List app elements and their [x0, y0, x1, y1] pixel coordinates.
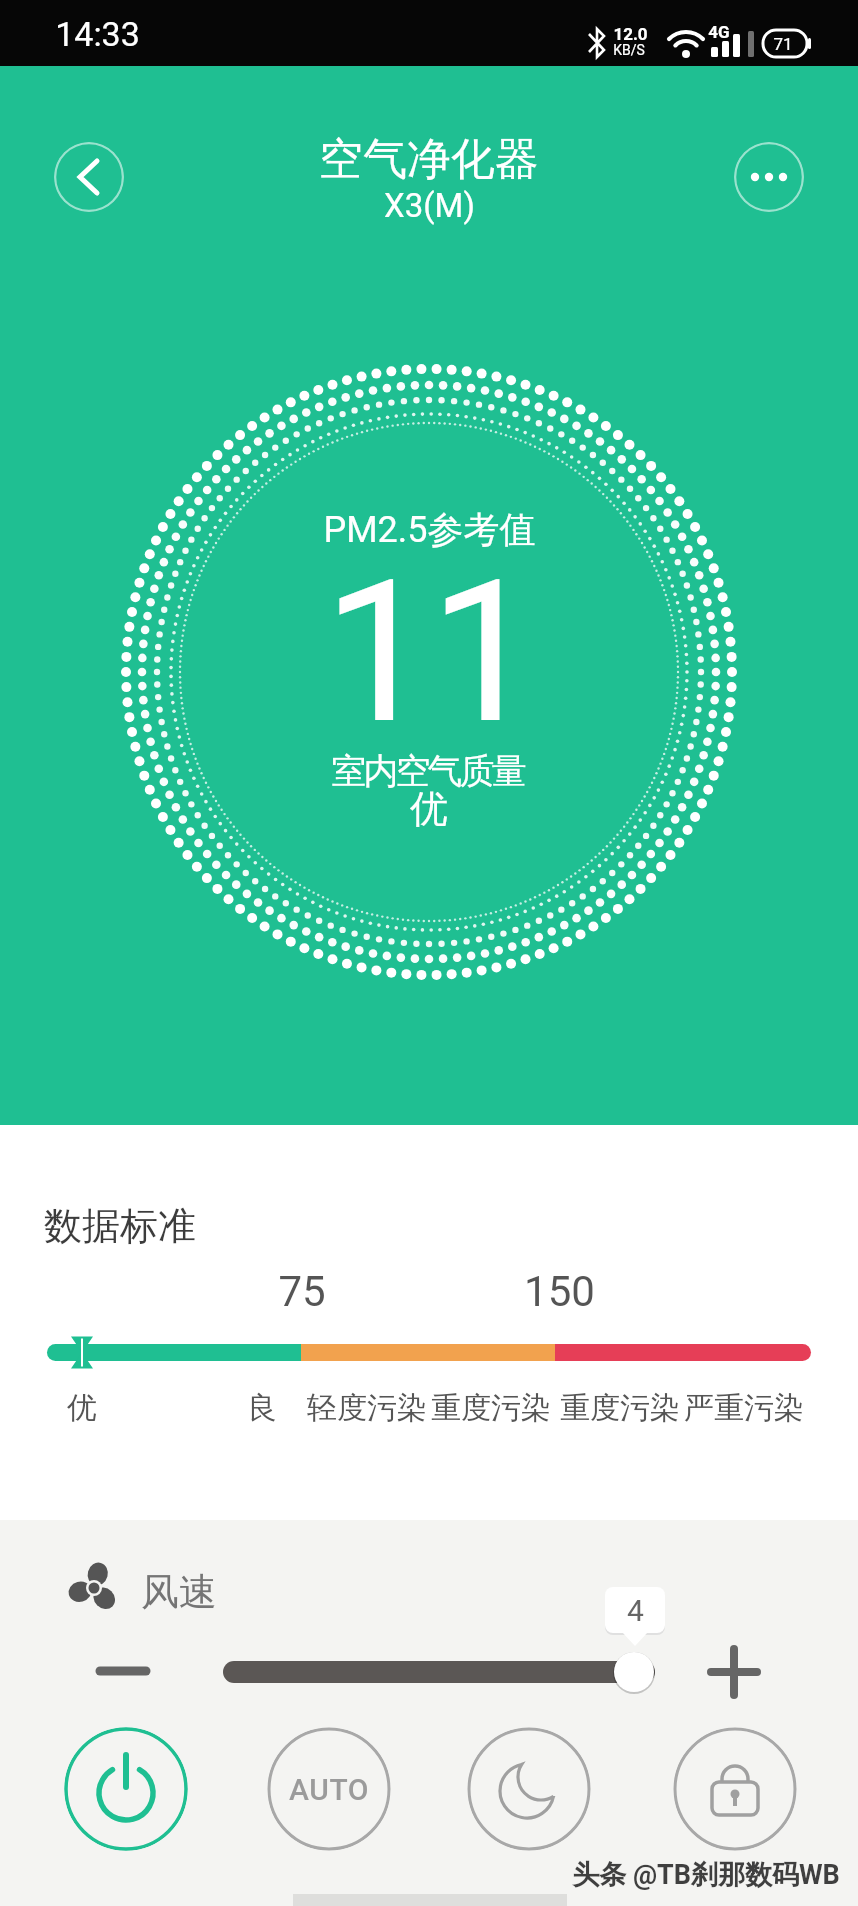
staticText: KB/S: [613, 42, 645, 58]
button[interactable]: AUTO: [267, 1727, 391, 1851]
staticText: 风速: [141, 1568, 217, 1616]
button[interactable]: [85, 1636, 161, 1706]
staticText: 重度污染: [431, 1389, 551, 1427]
staticText: 优: [67, 1389, 97, 1427]
staticText: 良: [247, 1389, 277, 1427]
button[interactable]: [673, 1727, 797, 1851]
staticText: 轻度污染: [307, 1389, 427, 1427]
staticText: 头条 @TB刹那数码WB: [572, 1858, 840, 1892]
staticText: 严重污染: [684, 1389, 804, 1427]
staticText: PM2.5参考值: [323, 507, 536, 552]
button[interactable]: [696, 1634, 772, 1710]
button[interactable]: [213, 1641, 665, 1703]
staticText: 数据标准: [44, 1202, 196, 1250]
button[interactable]: [64, 1727, 188, 1851]
staticText: 71: [773, 34, 793, 54]
staticText: 11: [323, 538, 536, 768]
button[interactable]: [54, 142, 124, 212]
staticText: 4: [627, 1593, 644, 1628]
staticText: 4G: [708, 22, 730, 42]
button[interactable]: [467, 1727, 591, 1851]
staticText: 重度污染: [560, 1389, 680, 1427]
staticText: 室内空气质量: [333, 749, 525, 793]
staticText: AUTO: [289, 1772, 369, 1807]
staticText: 150: [524, 1267, 595, 1316]
button[interactable]: [734, 142, 804, 212]
staticText: 12.0: [613, 24, 648, 44]
staticText: 空气净化器: [319, 132, 539, 187]
staticText: 优: [410, 785, 448, 833]
staticText: X3(M): [384, 186, 475, 225]
staticText: 14:33: [55, 14, 140, 54]
staticText: 75: [278, 1267, 326, 1316]
